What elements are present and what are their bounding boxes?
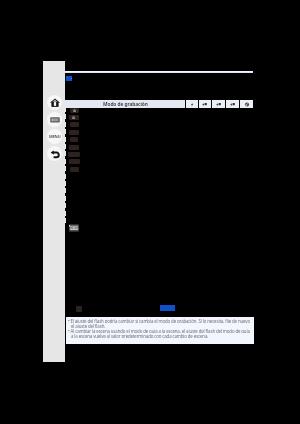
button[interactable]: Flash mode 4	[226, 100, 239, 108]
button[interactable]: Menu	[47, 129, 62, 144]
button[interactable]: Table of contents	[47, 112, 62, 127]
staticText: MENU	[49, 134, 61, 139]
button[interactable]: Recording mode 4	[69, 130, 79, 135]
staticText: iA	[72, 115, 76, 120]
staticText: • El ajuste del flash podría cambiar si …	[68, 318, 250, 323]
staticText: a la escena vuelve al valor predetermina…	[71, 333, 209, 338]
staticText: Modo de grabación	[103, 101, 148, 108]
button[interactable]: Flash mode 3	[212, 100, 225, 108]
button[interactable]: Home	[47, 95, 62, 110]
button[interactable]: Flash mode 1	[186, 100, 198, 108]
button[interactable]: Flash mode 5	[240, 100, 253, 108]
button[interactable]: Recording mode 3	[70, 122, 79, 127]
button[interactable]: Recording mode 9	[70, 167, 79, 172]
button[interactable]: Recording mode 2	[69, 115, 79, 120]
button[interactable]: Camera illustration	[69, 224, 79, 232]
staticText: • Al cambiar la escena usando el modo de…	[68, 328, 250, 333]
button[interactable]: Recording mode 5	[70, 137, 78, 142]
button[interactable]: Recording mode 7	[68, 152, 80, 157]
button[interactable]: Recording mode 1	[70, 108, 79, 113]
button[interactable]: Back	[47, 146, 62, 161]
button[interactable]: Recording mode 6	[69, 145, 79, 150]
staticText: iA	[73, 108, 77, 113]
button[interactable]: Flash mode 2	[199, 100, 211, 108]
button[interactable]: Recording mode 8	[69, 159, 80, 164]
staticText: el ajuste del flash.	[71, 323, 106, 328]
